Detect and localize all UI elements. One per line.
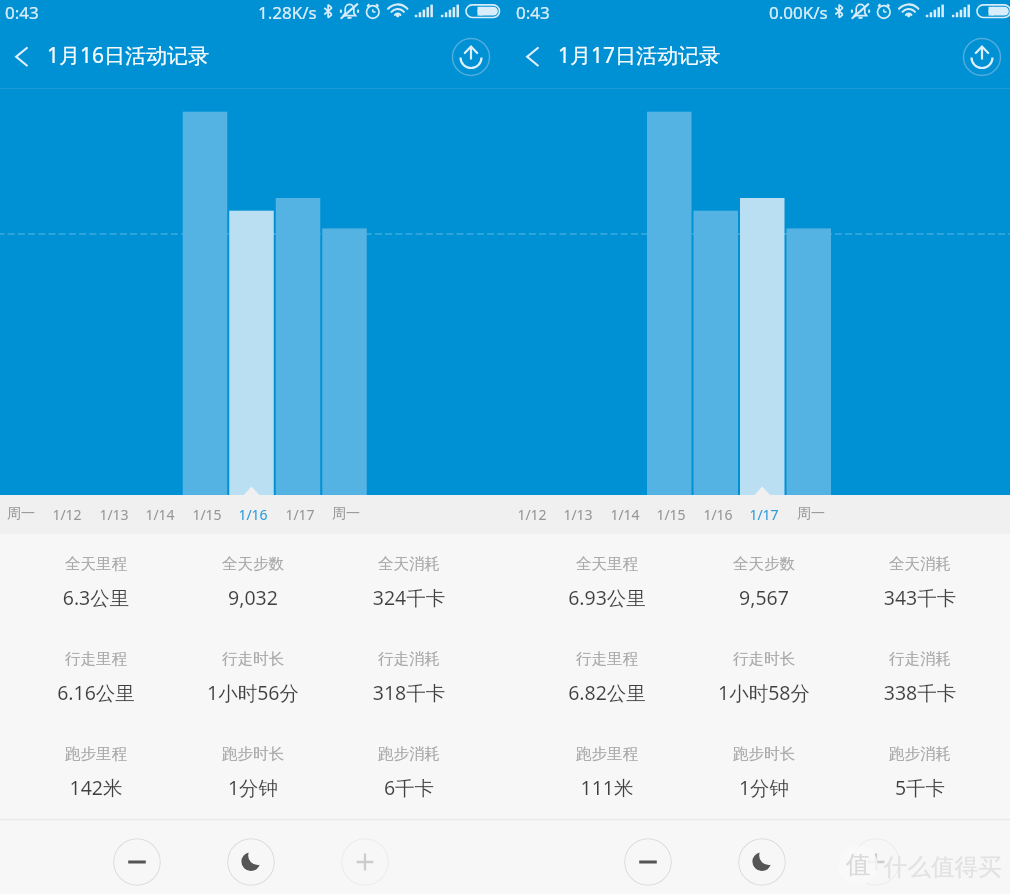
staticText: 6.3公里 <box>36 584 156 611</box>
staticText: 1/13 <box>552 505 604 524</box>
button[interactable]: Back <box>511 32 556 88</box>
staticText: 1/12 <box>506 505 558 524</box>
button[interactable]: Next day <box>852 838 900 886</box>
staticText: 全天步数 <box>203 554 303 574</box>
staticText: 142米 <box>36 774 156 801</box>
staticText: 行走时长 <box>203 649 303 669</box>
staticText: 6.82公里 <box>547 679 667 706</box>
staticText: 周一 <box>0 505 47 523</box>
staticText: 1分钟 <box>704 774 824 801</box>
button[interactable]: Upload <box>449 35 493 79</box>
staticText: 0:43 <box>516 1 550 24</box>
staticText: 1.28K/s <box>258 1 317 24</box>
staticText: 跑步里程 <box>46 744 146 764</box>
staticText: 1分钟 <box>193 774 313 801</box>
staticText: 1小时58分 <box>704 679 824 706</box>
staticText: 全天步数 <box>714 554 814 574</box>
staticText: 1月16日活动记录 <box>47 41 210 70</box>
button[interactable]: Sleep <box>738 838 786 886</box>
staticText: 1月17日活动记录 <box>558 41 721 70</box>
staticText: 1/16 <box>227 505 279 524</box>
staticText: 1/16 <box>692 505 744 524</box>
staticText: 1/14 <box>134 505 186 524</box>
button[interactable]: Previous day <box>624 838 672 886</box>
staticText: 1小时56分 <box>193 679 313 706</box>
staticText: 1/17 <box>274 505 326 524</box>
staticText: 全天消耗 <box>870 554 970 574</box>
staticText: 跑步消耗 <box>870 744 970 764</box>
staticText: 1/15 <box>181 505 233 524</box>
staticText: 6千卡 <box>349 774 469 801</box>
staticText: 9,567 <box>704 584 824 611</box>
staticText: 值 <box>846 850 870 880</box>
staticText: 周一 <box>320 505 372 523</box>
staticText: 全天里程 <box>46 554 146 574</box>
staticText: 全天消耗 <box>359 554 459 574</box>
button[interactable]: Next day <box>341 838 389 886</box>
staticText: 5千卡 <box>860 774 980 801</box>
staticText: 0.00K/s <box>769 1 828 24</box>
staticText: 1/12 <box>41 505 93 524</box>
staticText: 行走里程 <box>46 649 146 669</box>
button[interactable]: Back <box>0 32 45 88</box>
button[interactable]: Sleep <box>227 838 275 886</box>
staticText: 跑步时长 <box>714 744 814 764</box>
staticText: 9,032 <box>193 584 313 611</box>
staticText: 111米 <box>547 774 667 801</box>
staticText: 1/17 <box>738 505 790 524</box>
staticText: 343千卡 <box>860 584 980 611</box>
staticText: 318千卡 <box>349 679 469 706</box>
staticText: 324千卡 <box>349 584 469 611</box>
staticText: 0:43 <box>5 1 39 24</box>
staticText: 行走消耗 <box>870 649 970 669</box>
button[interactable]: Upload <box>960 35 1004 79</box>
staticText: 1/14 <box>599 505 651 524</box>
staticText: 1/15 <box>645 505 697 524</box>
staticText: 1/13 <box>88 505 140 524</box>
staticText: 周一 <box>785 505 837 523</box>
staticText: 338千卡 <box>860 679 980 706</box>
staticText: 行走消耗 <box>359 649 459 669</box>
staticText: 什么值得买 <box>884 852 1002 882</box>
staticText: 跑步里程 <box>557 744 657 764</box>
staticText: 全天里程 <box>557 554 657 574</box>
staticText: 行走时长 <box>714 649 814 669</box>
staticText: 跑步时长 <box>203 744 303 764</box>
button[interactable]: Previous day <box>113 838 161 886</box>
staticText: 6.16公里 <box>36 679 156 706</box>
staticText: 6.93公里 <box>547 584 667 611</box>
staticText: 跑步消耗 <box>359 744 459 764</box>
staticText: 行走里程 <box>557 649 657 669</box>
